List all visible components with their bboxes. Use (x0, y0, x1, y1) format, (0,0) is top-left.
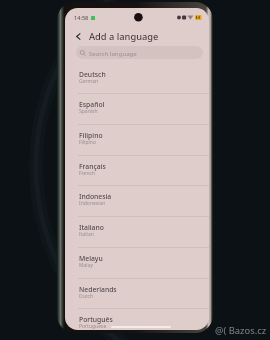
staticText: 14:58 (74, 14, 89, 22)
staticText: German (79, 78, 99, 85)
button[interactable]: Español (65, 93, 209, 124)
button[interactable]: Filipino (65, 124, 209, 155)
staticText: Malay (79, 262, 93, 269)
button[interactable]: Search language (76, 46, 203, 59)
staticText: Italiano (79, 223, 104, 232)
staticText: Search language (89, 49, 137, 57)
staticText: Deutsch (79, 70, 106, 79)
staticText: Dutch (79, 293, 94, 300)
button[interactable]: Deutsch (65, 63, 209, 94)
staticText: Filipino (79, 131, 103, 140)
button[interactable]: Italiano (65, 216, 209, 247)
button[interactable]: Indonesia (65, 185, 209, 216)
staticText: Français (79, 162, 106, 171)
staticText: Nederlands (79, 285, 117, 294)
staticText: Italian (79, 231, 94, 238)
staticText: Indonesian (79, 200, 106, 207)
staticText: Add a language (89, 30, 159, 43)
staticText: Indonesia (79, 192, 112, 201)
staticText: @( Bazos.cz (215, 324, 267, 337)
button[interactable]: Français (65, 155, 209, 186)
button[interactable]: Melayu (65, 247, 209, 278)
staticText: French (79, 170, 95, 177)
staticText: Filipino (79, 139, 96, 146)
button[interactable]: Nederlands (65, 278, 209, 309)
staticText: Spanish (79, 108, 98, 115)
button[interactable]: Back (71, 29, 86, 44)
button[interactable]: Português (65, 308, 209, 330)
staticText: Español (79, 100, 105, 109)
staticText: Português (79, 315, 113, 324)
staticText: Portuguese (79, 323, 107, 330)
staticText: Melayu (79, 254, 103, 263)
